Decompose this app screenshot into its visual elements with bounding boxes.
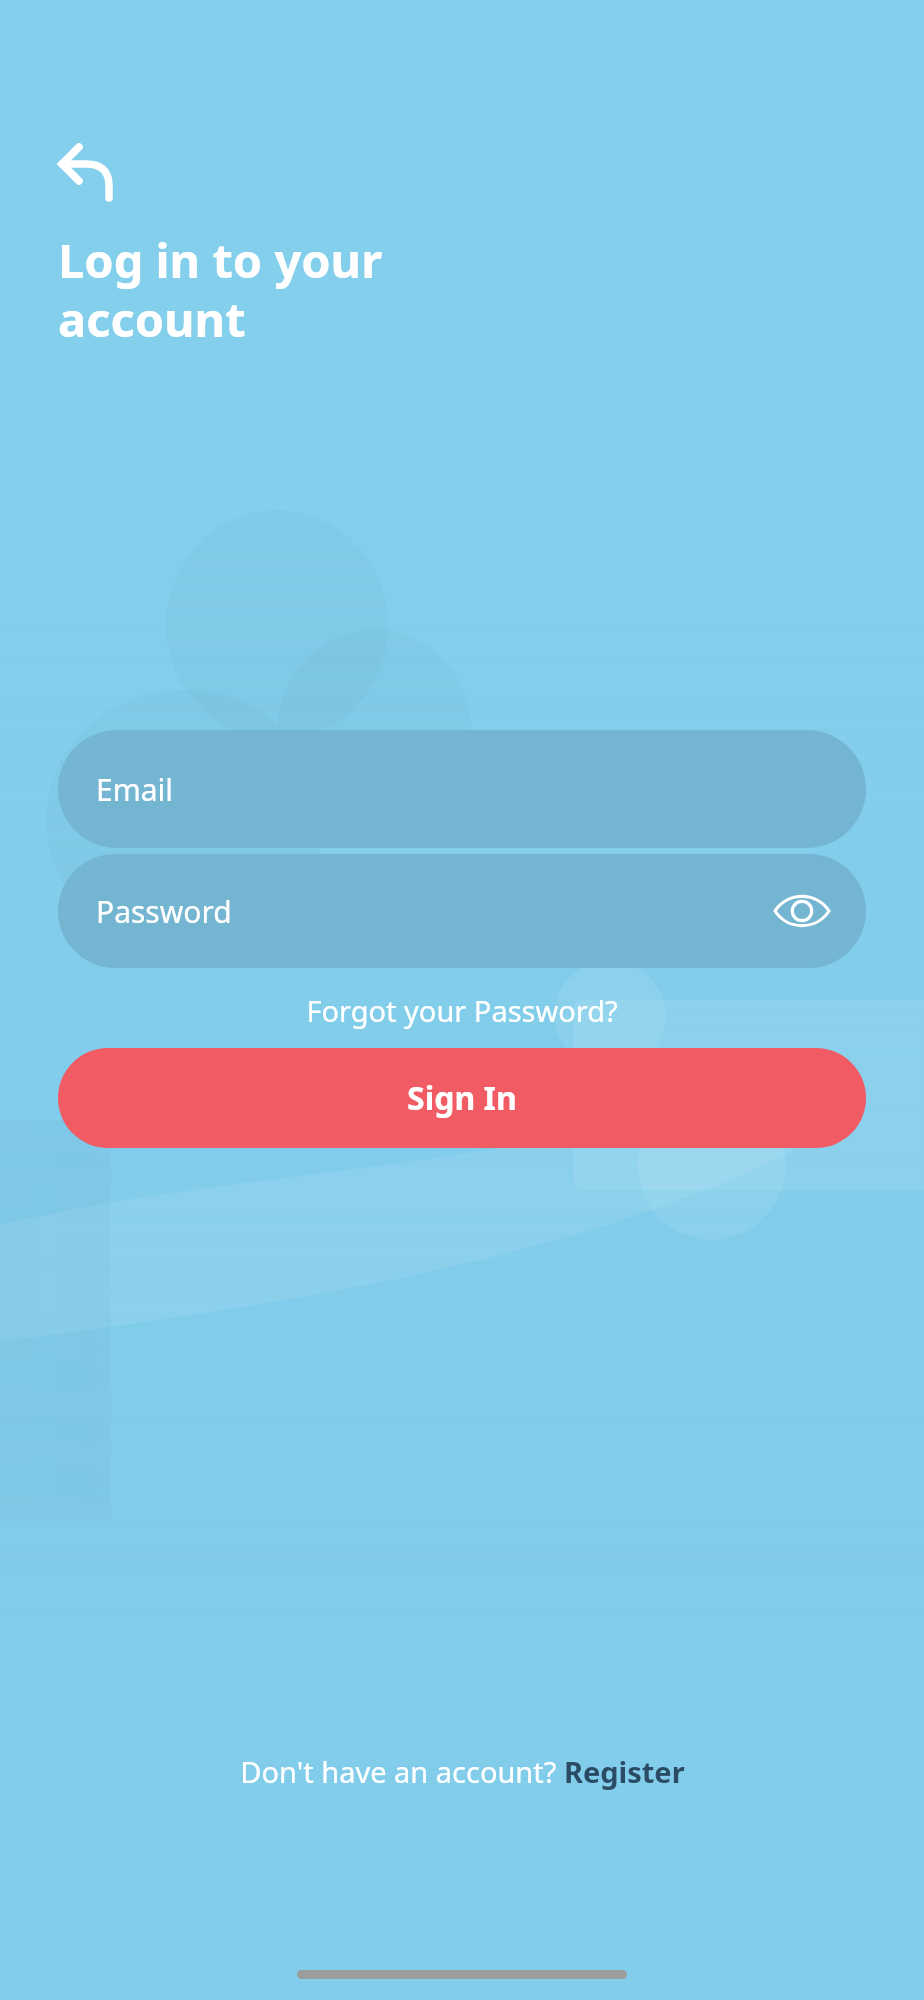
staticText: Log in to your account <box>58 228 698 350</box>
button[interactable]: Don't have an account? Register <box>232 1744 693 1799</box>
button[interactable]: Password <box>58 854 866 968</box>
button[interactable]: Sign In <box>58 1048 866 1148</box>
staticText: Email <box>96 769 174 810</box>
staticText: Don't have an account? Register <box>240 1752 685 1791</box>
staticText: Sign In <box>407 1076 517 1120</box>
button[interactable]: Back <box>44 140 120 210</box>
button[interactable]: Show password <box>768 884 836 938</box>
staticText: Password <box>96 891 232 932</box>
button[interactable]: Email <box>58 730 866 848</box>
staticText: Forgot your Password? <box>306 991 618 1030</box>
button[interactable]: Forgot your Password? <box>58 982 866 1038</box>
